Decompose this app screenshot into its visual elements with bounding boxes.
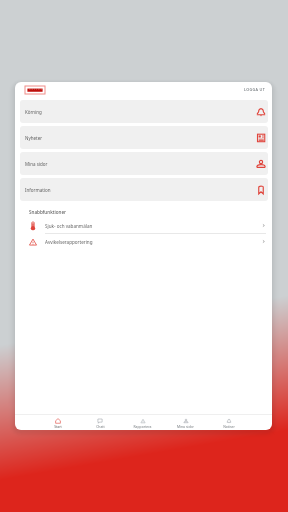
button[interactable]: Information [20,178,268,201]
button[interactable]: Nyheter [20,126,268,149]
staticText: Chatt [96,424,105,429]
button[interactable]: Logo [25,86,45,94]
button[interactable]: Notiser [207,418,250,429]
staticText: Sjuk- och vabanmälan [45,223,93,229]
staticText: Information [25,187,51,193]
button[interactable]: Chatt [79,418,121,429]
button[interactable]: Mina sidor [20,152,268,175]
button[interactable]: Sjuk- och vabanmälan [15,218,272,233]
button[interactable]: Körning [20,100,268,123]
staticText: Notiser [223,424,235,429]
staticText: Snabbfunktioner [29,209,66,215]
staticText: Avvikelserapportering [45,239,93,245]
button[interactable]: LOGGA UT [244,87,266,92]
staticText: Mina sidor [25,161,48,167]
button[interactable]: Mina sidor [164,418,207,429]
staticText: LOGGA UT [244,87,266,92]
staticText: Rapportera [133,424,152,429]
button[interactable]: Rapportera [121,418,164,429]
button[interactable]: Avvikelserapportering [15,234,272,249]
button[interactable]: Start [37,418,79,429]
staticText: Nyheter [25,135,43,141]
staticText: Mina sidor [177,424,194,429]
staticText: Körning [25,109,42,115]
staticText: Start [54,424,62,429]
